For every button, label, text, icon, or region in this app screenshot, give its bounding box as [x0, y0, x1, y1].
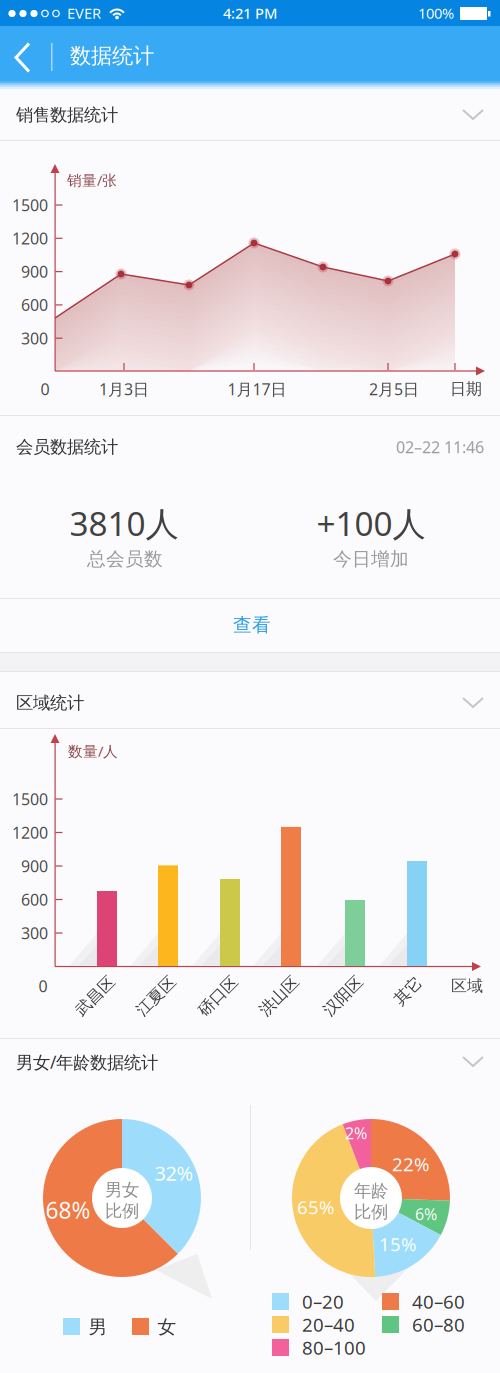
staticText: 02–22 11:46: [396, 436, 484, 458]
staticText: 区域: [451, 976, 483, 996]
staticText: 汉阳区: [319, 986, 367, 1006]
staticText: 数量/人: [68, 741, 118, 761]
staticText: 1200: [12, 822, 48, 843]
staticText: 2月5日: [369, 378, 419, 400]
staticText: 1月17日: [227, 378, 286, 400]
button[interactable]: 会员数据统计: [0, 416, 500, 478]
staticText: 22%: [392, 1152, 430, 1176]
staticText: 洪山区: [255, 986, 303, 1006]
staticText: 900: [21, 261, 48, 282]
staticText: 会员数据统计: [16, 436, 118, 458]
staticText: 销量/张: [67, 170, 117, 190]
staticText: EVER: [67, 3, 101, 23]
staticText: 年龄: [354, 1180, 388, 1202]
staticText: +100人: [316, 501, 425, 545]
staticText: 32%: [154, 1160, 193, 1186]
staticText: 硚口区: [194, 986, 242, 1006]
staticText: 男女/年龄数据统计: [16, 1050, 158, 1073]
staticText: 600: [21, 889, 48, 910]
staticText: 65%: [297, 1195, 335, 1219]
staticText: 900: [21, 855, 48, 877]
staticText: 68%: [45, 1195, 90, 1225]
button[interactable]: [0, 29, 44, 84]
staticText: 比例: [105, 1200, 139, 1222]
staticText: 男: [88, 1315, 107, 1338]
staticText: 80–100: [302, 1335, 366, 1360]
staticText: 1500: [12, 194, 48, 216]
staticText: 总会员数: [87, 547, 163, 570]
staticText: 100%: [418, 3, 454, 23]
staticText: 3810人: [69, 501, 178, 545]
staticText: 数据统计: [70, 43, 154, 69]
staticText: 20–40: [302, 1312, 355, 1337]
button[interactable]: 区域统计: [0, 675, 500, 731]
button[interactable]: 查看: [2, 598, 500, 652]
staticText: 查看: [233, 613, 271, 636]
staticText: 300: [21, 922, 48, 944]
staticText: 60–80: [412, 1312, 465, 1337]
staticText: 15%: [379, 1232, 417, 1256]
staticText: 40–60: [412, 1289, 465, 1314]
staticText: 销售数据统计: [16, 104, 118, 126]
staticText: 日期: [450, 379, 482, 399]
staticText: 女: [157, 1315, 176, 1338]
staticText: 今日增加: [333, 547, 409, 570]
staticText: 1200: [12, 228, 48, 249]
staticText: 1月3日: [99, 378, 149, 400]
staticText: 0: [40, 378, 49, 400]
staticText: 0–20: [302, 1289, 344, 1314]
staticText: 区域统计: [16, 692, 84, 714]
staticText: 600: [21, 294, 48, 315]
button[interactable]: 男女/年龄数据统计: [0, 1039, 500, 1085]
staticText: 6%: [415, 1203, 437, 1225]
staticText: 比例: [354, 1201, 388, 1223]
staticText: 300: [21, 328, 48, 349]
staticText: 4:21 PM: [223, 3, 277, 23]
staticText: 武昌区: [71, 986, 119, 1006]
staticText: 1500: [12, 788, 48, 810]
staticText: 2%: [345, 1122, 367, 1144]
staticText: 江夏区: [132, 986, 180, 1006]
button[interactable]: 销售数据统计: [0, 90, 500, 140]
staticText: 其它: [392, 981, 424, 1001]
staticText: 0: [38, 975, 47, 997]
staticText: 男女: [105, 1179, 139, 1201]
